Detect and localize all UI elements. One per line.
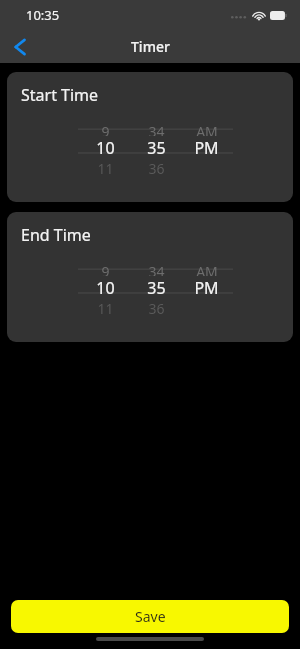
button[interactable]: End Time <box>7 212 293 342</box>
staticText: PM <box>194 277 219 299</box>
staticText: 10 <box>96 277 115 299</box>
staticText: 11 <box>97 159 114 177</box>
staticText: Save <box>135 607 166 626</box>
staticText: 10:35 <box>26 6 60 24</box>
staticText: AM <box>196 122 218 136</box>
staticText: 35 <box>147 277 166 299</box>
button[interactable]: Start Time <box>7 72 293 202</box>
staticText: Start Time <box>21 84 99 106</box>
staticText: AM <box>196 262 218 276</box>
staticText: 9 <box>101 262 110 276</box>
staticText: 11 <box>97 299 114 317</box>
button[interactable]: Save <box>11 600 289 633</box>
staticText: 9 <box>101 122 110 136</box>
staticText: End Time <box>21 224 91 246</box>
staticText: 34 <box>148 122 165 136</box>
button[interactable]: 9 <box>78 122 233 184</box>
staticText: 36 <box>148 159 165 177</box>
staticText: PM <box>194 137 219 159</box>
staticText: 35 <box>147 137 166 159</box>
staticText: Timer <box>131 37 170 56</box>
staticText: 36 <box>148 299 165 317</box>
button[interactable]: 9 <box>78 262 233 324</box>
staticText: 10 <box>96 137 115 159</box>
button[interactable]: Back <box>0 30 40 63</box>
staticText: 34 <box>148 262 165 276</box>
